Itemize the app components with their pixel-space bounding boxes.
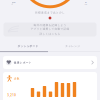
button[interactable]: チャレンジ xyxy=(49,41,97,51)
staticText: 3,210 xyxy=(7,93,16,97)
staticText: 8,240 xyxy=(12,1,16,3)
staticText: 毎日の健康を記録しよう xyxy=(33,23,66,27)
staticText: 4.2 xyxy=(85,1,87,3)
staticText: 健康レポート xyxy=(14,61,32,64)
staticText: 歩数 xyxy=(14,77,20,80)
staticText: 目標達成まであと少し xyxy=(35,11,65,14)
staticText: 詳しくはこちら xyxy=(39,32,60,36)
staticText: km xyxy=(85,3,87,5)
staticText: ダッシュボード xyxy=(17,44,38,48)
button[interactable]: 健康レポート xyxy=(3,56,97,69)
staticText: チャレンジ xyxy=(65,44,80,48)
staticText: アプリと連携して自動で記録 xyxy=(30,27,69,31)
button[interactable]: ダッシュボード xyxy=(4,41,52,51)
